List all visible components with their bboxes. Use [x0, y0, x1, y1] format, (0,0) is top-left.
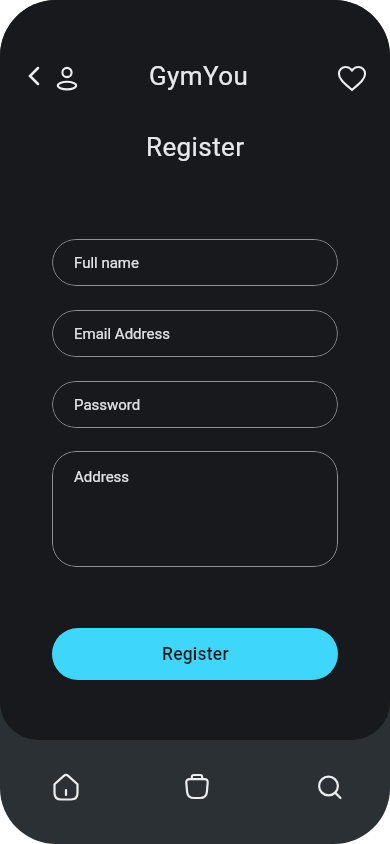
staticText: GymYou — [149, 61, 249, 91]
staticText: Email Address — [74, 325, 170, 343]
staticText: Full name — [74, 254, 139, 272]
staticText: Register — [146, 132, 245, 162]
button[interactable] — [51, 62, 83, 94]
button[interactable] — [313, 771, 345, 803]
button[interactable] — [336, 63, 368, 95]
staticText: Password — [74, 396, 141, 414]
button[interactable]: Password — [52, 381, 338, 428]
button[interactable]: Email Address — [52, 310, 338, 357]
button[interactable] — [50, 771, 82, 803]
button[interactable]: Address — [52, 451, 338, 567]
button[interactable]: Register — [52, 628, 338, 680]
button[interactable]: Full name — [52, 239, 338, 286]
staticText: Address — [74, 468, 130, 486]
button[interactable] — [16, 58, 52, 94]
staticText: Register — [162, 644, 229, 665]
button[interactable] — [181, 771, 213, 803]
